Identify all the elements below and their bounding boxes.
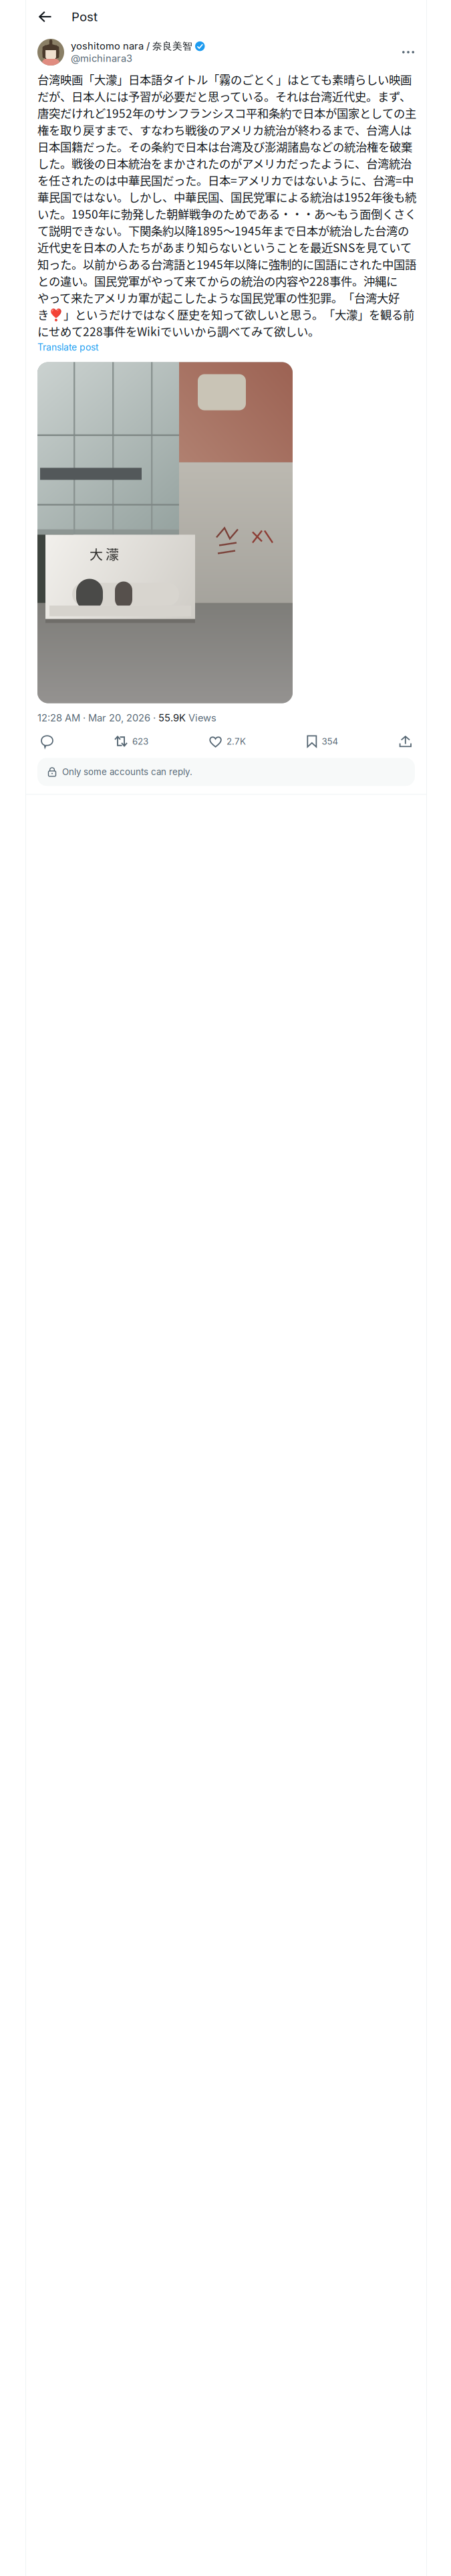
staticText: 2.7K bbox=[227, 736, 246, 747]
staticText: yoshitomo nara / 奈良美智 bbox=[71, 40, 192, 52]
staticText: 台湾映画「大濛」日本語タイトル「霧のごとく」はとても素晴らしい映画だが、日本人に… bbox=[37, 71, 416, 339]
staticText: Views bbox=[186, 712, 216, 724]
button[interactable]: Share bbox=[399, 732, 412, 751]
staticText: @michinara3 bbox=[71, 52, 132, 64]
staticText: 大 濛 bbox=[90, 544, 119, 563]
staticText: 623 bbox=[132, 736, 148, 747]
staticText: 354 bbox=[322, 736, 338, 747]
staticText: Post bbox=[71, 9, 98, 24]
button[interactable]: Translate post bbox=[37, 340, 99, 354]
button[interactable]: Back bbox=[34, 5, 57, 28]
button[interactable]: Bookmark bbox=[307, 732, 338, 751]
button[interactable]: Photo bbox=[37, 362, 293, 703]
staticText: 12:28 AM · Mar 20, 2026 · bbox=[37, 712, 158, 724]
button[interactable]: Like bbox=[209, 732, 246, 751]
staticText: Only some accounts can reply. bbox=[62, 767, 192, 777]
button[interactable]: Reply bbox=[41, 732, 53, 751]
staticText: Translate post bbox=[37, 341, 99, 353]
button[interactable]: More bbox=[400, 43, 417, 61]
button[interactable]: Repost bbox=[114, 732, 148, 751]
staticText: 55.9K bbox=[158, 712, 186, 724]
